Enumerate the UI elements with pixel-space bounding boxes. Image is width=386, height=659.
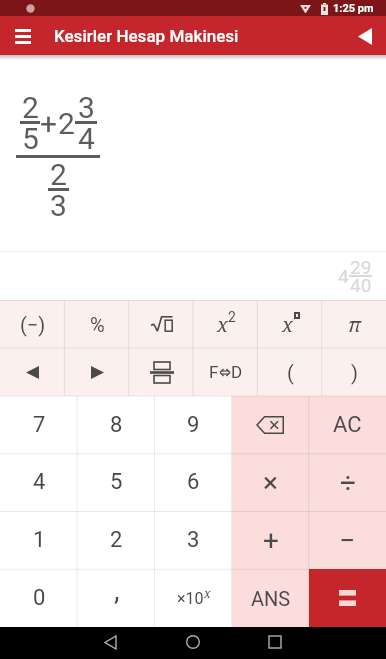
staticText: π (348, 311, 361, 338)
staticText: 9 (187, 412, 200, 438)
button[interactable]: 5 (78, 453, 155, 511)
button[interactable] (309, 569, 386, 627)
staticText: ( (287, 361, 294, 384)
button[interactable]: 9 (155, 396, 232, 453)
staticText: ) (351, 361, 358, 384)
button[interactable]: x (258, 300, 322, 348)
staticText: 6 (187, 469, 200, 495)
button[interactable]: F (194, 348, 258, 396)
button[interactable]: 3 (155, 511, 232, 569)
staticText: 2 (110, 527, 123, 553)
staticText: ÷ (340, 466, 356, 499)
button[interactable] (179, 628, 207, 656)
button[interactable]: 2 (78, 511, 155, 569)
button[interactable] (261, 628, 289, 656)
staticText: Kesirler Hesap Makinesi (54, 26, 239, 46)
staticText: 29 (350, 256, 372, 278)
staticText: 2 (22, 90, 39, 125)
staticText: 7 (33, 412, 46, 438)
staticText: 4 (338, 265, 349, 287)
staticText: AC (333, 412, 362, 438)
staticText: 1 (33, 527, 46, 553)
button[interactable]: π (322, 300, 386, 348)
button[interactable]: x (194, 300, 258, 348)
staticText: 3 (187, 527, 200, 553)
staticText: F (209, 362, 219, 382)
staticText: (−) (20, 313, 46, 336)
staticText: 4 (78, 121, 95, 156)
button[interactable]: ) (322, 348, 386, 396)
button[interactable]: % (65, 300, 130, 348)
button[interactable]: 8 (78, 396, 155, 453)
button[interactable]: AC (309, 396, 386, 453)
staticText: × (263, 466, 278, 499)
staticText: − (339, 524, 356, 557)
button[interactable] (130, 300, 194, 348)
staticText: 40 (350, 274, 372, 296)
button[interactable]: + (232, 511, 309, 569)
button[interactable]: ÷ (309, 453, 386, 511)
button[interactable]: 7 (0, 396, 78, 453)
staticText: 4 (33, 469, 46, 495)
button[interactable] (96, 628, 124, 656)
staticText: 2 (228, 309, 236, 325)
staticText: 2 (58, 106, 75, 141)
staticText: ANS (251, 587, 291, 610)
staticText: + (40, 106, 58, 141)
staticText: 8 (110, 412, 123, 438)
staticText: x (282, 311, 293, 338)
button[interactable] (9, 22, 37, 50)
button[interactable] (0, 348, 65, 396)
staticText: 1:25 pm (333, 2, 374, 15)
staticText: 2 (50, 157, 67, 192)
button[interactable]: 1 (0, 511, 78, 569)
staticText: % (90, 313, 105, 336)
staticText: + (263, 524, 279, 557)
button[interactable]: 4 (0, 453, 78, 511)
button[interactable]: , (78, 569, 155, 627)
button[interactable]: ×10 (155, 569, 232, 627)
button[interactable]: × (232, 453, 309, 511)
staticText: 0 (33, 585, 46, 611)
staticText: 5 (22, 121, 39, 156)
staticText: x (204, 585, 211, 601)
staticText: ×10 (177, 589, 204, 608)
button[interactable]: 0 (0, 569, 78, 627)
button[interactable]: 6 (155, 453, 232, 511)
button[interactable]: (−) (0, 300, 65, 348)
staticText: x (217, 311, 228, 338)
button[interactable]: ( (258, 348, 322, 396)
staticText: 3 (50, 188, 67, 223)
staticText: 5 (110, 469, 123, 495)
staticText: 3 (78, 90, 95, 125)
button[interactable]: ANS (232, 569, 309, 627)
button[interactable] (130, 348, 194, 396)
button[interactable] (65, 348, 130, 396)
staticText: , (114, 574, 120, 607)
staticText: D (231, 362, 243, 382)
button[interactable] (353, 24, 377, 48)
button[interactable]: − (309, 511, 386, 569)
button[interactable] (232, 396, 309, 453)
